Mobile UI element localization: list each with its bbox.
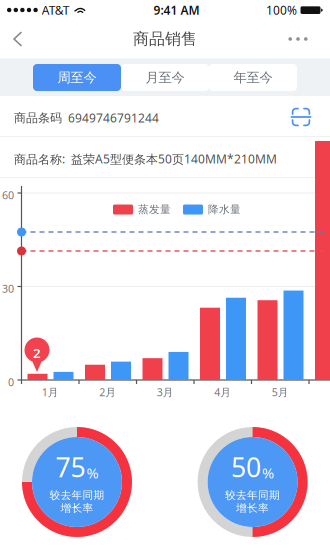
staticText: 1月: [42, 385, 59, 399]
staticText: 周至今: [57, 69, 96, 86]
button[interactable]: 周至今: [33, 64, 121, 91]
staticText: 商品销售: [133, 29, 197, 49]
staticText: %: [86, 463, 98, 483]
staticText: 100%: [266, 2, 297, 18]
staticText: 4月: [214, 385, 231, 399]
staticText: %: [262, 463, 274, 483]
button[interactable]: More options: [278, 21, 318, 57]
staticText: AT&T: [42, 2, 70, 18]
staticText: 2: [33, 344, 41, 362]
staticText: 50: [231, 449, 261, 485]
staticText: 6949746791244: [62, 110, 159, 126]
staticText: 5月: [272, 385, 289, 399]
staticText: 0: [8, 375, 14, 389]
staticText: 较去年同期: [49, 489, 104, 502]
staticText: 3月: [157, 385, 174, 399]
button[interactable]: 月至今: [121, 64, 209, 91]
staticText: 较去年同期: [225, 489, 280, 502]
staticText: 30: [2, 281, 14, 296]
staticText: 降水量: [208, 203, 241, 216]
staticText: 增长率: [236, 502, 269, 515]
staticText: 蒸发量: [138, 203, 171, 216]
staticText: 2月: [99, 385, 116, 399]
staticText: 60: [2, 188, 14, 202]
staticText: 9:41 AM: [153, 2, 199, 18]
staticText: 增长率: [60, 502, 93, 515]
button[interactable]: Scan barcode: [291, 107, 311, 127]
staticText: 月至今: [145, 69, 184, 86]
staticText: 商品条码: [14, 111, 62, 125]
staticText: 商品名称: 益荣A5型便条本50页140MM*210MM: [14, 151, 277, 167]
button[interactable]: Back: [0, 21, 40, 57]
staticText: 年至今: [233, 69, 272, 86]
button[interactable]: 年至今: [209, 64, 297, 91]
staticText: 75: [55, 449, 85, 485]
